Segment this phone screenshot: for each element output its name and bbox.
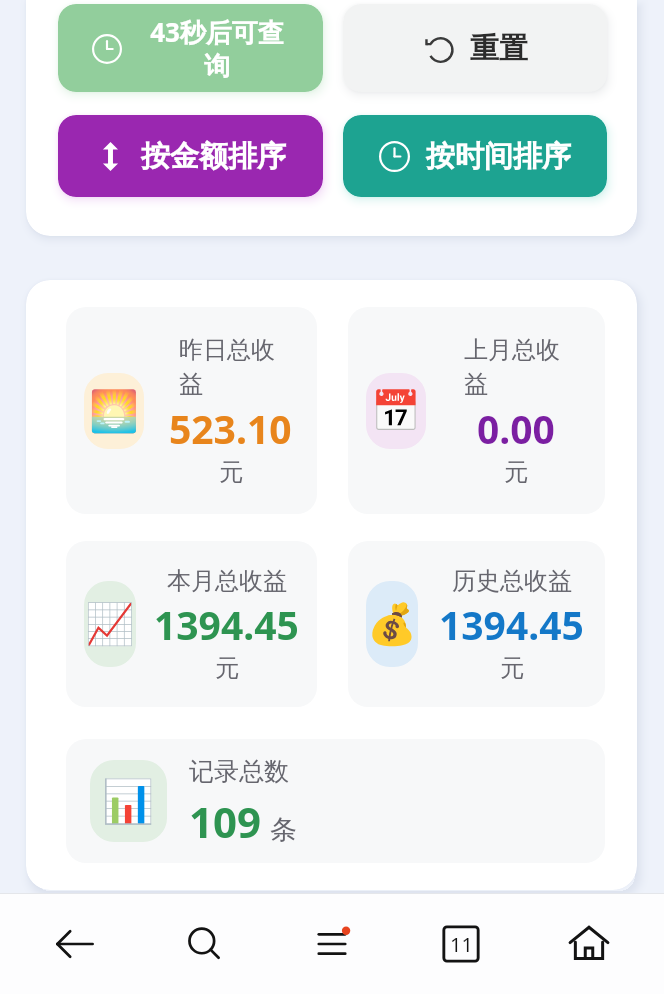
staticText: 元 [215,653,239,683]
staticText: 🌅 [89,388,139,435]
button[interactable]: Tabs [409,893,513,994]
button[interactable]: 按时间排序 [343,115,607,197]
staticText: 元 [504,457,528,487]
button[interactable]: 43秒后可查询 [58,4,323,92]
button[interactable]: 📅 [348,307,605,514]
button[interactable]: Home [537,893,641,994]
staticText: 523.10 [169,402,292,455]
staticText: 109 [189,793,262,850]
staticText: 昨日总收益 [179,335,283,400]
staticText: 上月总收益 [464,335,568,400]
button[interactable]: 📊 [66,739,605,863]
button[interactable]: Back [23,893,127,994]
staticText: 元 [500,653,524,683]
staticText: 1394.45 [439,598,584,651]
staticText: 📈 [85,601,135,648]
staticText: 0.00 [477,402,555,455]
staticText: 按时间排序 [426,138,571,175]
staticText: 重置 [470,30,528,67]
staticText: 📅 [371,388,421,435]
button[interactable]: 📈 [66,541,317,707]
staticText: 📊 [102,777,155,826]
staticText: 1394.45 [154,598,299,651]
staticText: 11 [450,931,473,958]
staticText: 💰 [367,601,417,648]
staticText: 本月总收益 [167,566,287,596]
button[interactable]: 重置 [343,4,607,92]
button[interactable]: Search [152,893,256,994]
staticText: 历史总收益 [452,566,572,596]
staticText: 记录总数 [189,756,289,787]
staticText: 43秒后可查询 [144,14,290,83]
button[interactable]: 💰 [348,541,605,707]
button[interactable]: 按金额排序 [58,115,323,197]
button[interactable]: Menu [280,893,384,994]
staticText: 按金额排序 [141,138,286,175]
staticText: 元 [219,457,243,487]
button[interactable]: 🌅 [66,307,317,514]
staticText: 条 [270,813,297,847]
